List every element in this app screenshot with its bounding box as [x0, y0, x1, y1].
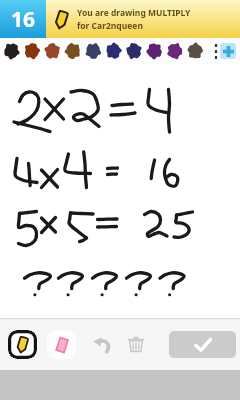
button[interactable]: Colour 10	[189, 41, 210, 62]
staticText: for Car2nqueen	[77, 20, 143, 32]
button[interactable]: Delete drawing	[123, 331, 149, 357]
button[interactable]: Undo	[89, 331, 115, 357]
staticText: You are drawing MULTIPLY	[77, 7, 191, 19]
button[interactable]: Colour 7	[126, 41, 147, 62]
button[interactable]: Done	[169, 331, 236, 358]
button[interactable]: Add colour	[220, 43, 236, 59]
button[interactable]: Colour 5	[84, 41, 105, 62]
button[interactable]: Colour 6	[105, 41, 126, 62]
button[interactable]: Eraser tool	[47, 330, 76, 359]
button[interactable]: Pencil tool	[8, 330, 37, 359]
button[interactable]: Colour 9	[168, 41, 189, 62]
button[interactable]: Colour 1	[0, 41, 21, 62]
staticText: 16	[11, 5, 36, 34]
button[interactable]: Colour 2	[21, 41, 42, 62]
button[interactable]: Colour 4	[63, 41, 84, 62]
button[interactable]: You are drawing MULTIPLY	[46, 0, 240, 38]
button[interactable]: Colour 8	[147, 41, 168, 62]
button[interactable]: Colour 3	[42, 41, 63, 62]
button[interactable]: Score 16	[0, 0, 46, 38]
